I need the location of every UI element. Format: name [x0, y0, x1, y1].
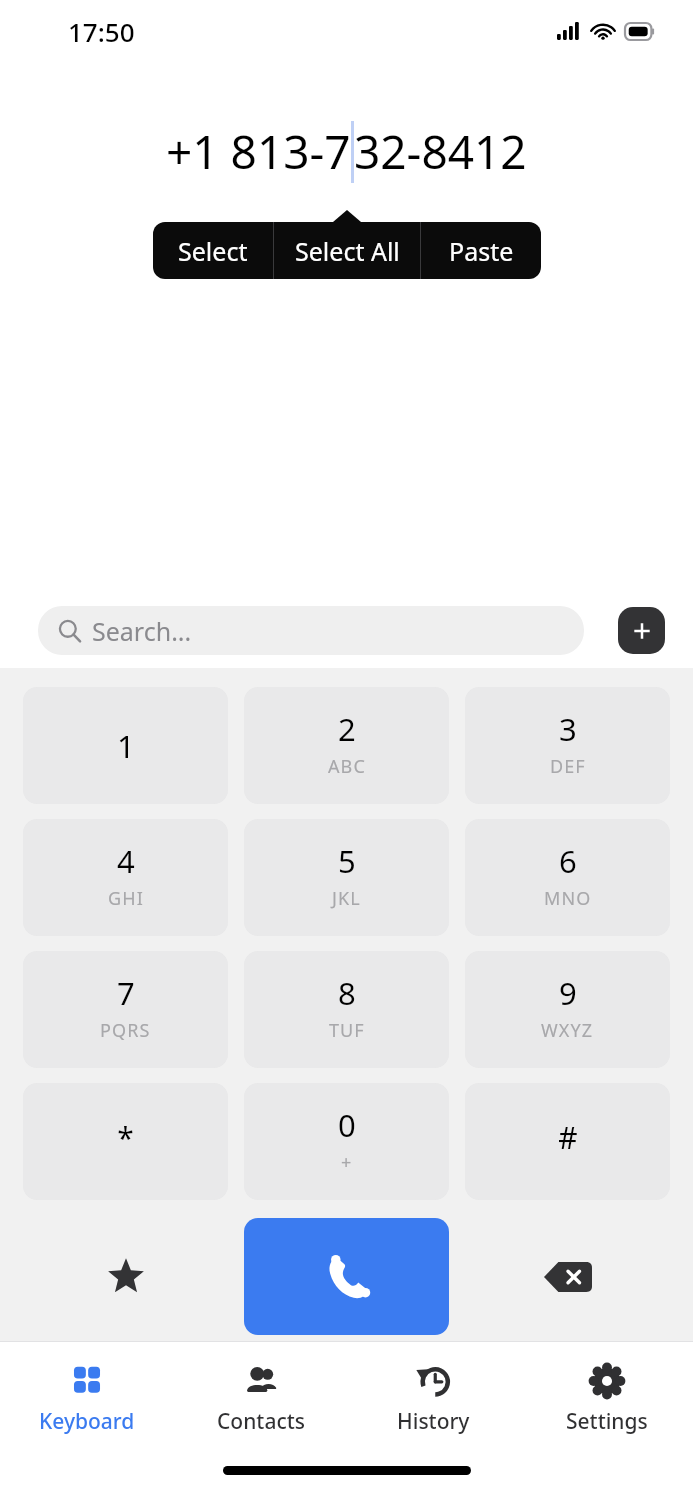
staticText: 1: [117, 725, 135, 767]
staticText: 0: [338, 1104, 356, 1146]
staticText: PQRS: [100, 1018, 151, 1043]
staticText: 32-8412: [354, 120, 527, 183]
staticText: 17:50: [68, 14, 135, 49]
button[interactable]: 1: [23, 687, 228, 804]
button[interactable]: Search...: [38, 606, 584, 655]
button[interactable]: Settings: [520, 1342, 693, 1454]
staticText: *: [117, 1117, 134, 1158]
button[interactable]: 8: [244, 951, 449, 1068]
button[interactable]: 4: [23, 819, 228, 936]
staticText: 7: [117, 972, 135, 1014]
staticText: ABC: [328, 754, 366, 779]
button[interactable]: *: [23, 1083, 228, 1200]
staticText: GHI: [108, 886, 144, 911]
staticText: 5: [338, 840, 356, 882]
button[interactable]: 0: [244, 1083, 449, 1200]
staticText: DEF: [550, 754, 586, 779]
button[interactable]: Add contact: [618, 607, 665, 654]
staticText: 2: [338, 708, 356, 750]
staticText: Keyboard: [39, 1407, 135, 1436]
staticText: #: [558, 1117, 578, 1158]
staticText: Search...: [92, 614, 192, 648]
button[interactable]: 7: [23, 951, 228, 1068]
staticText: 4: [117, 840, 135, 882]
staticText: Select: [178, 234, 248, 268]
staticText: 9: [559, 972, 577, 1014]
button[interactable]: Keyboard: [0, 1342, 174, 1454]
button[interactable]: 9: [465, 951, 670, 1068]
button[interactable]: 5: [244, 819, 449, 936]
button[interactable]: Select: [153, 222, 273, 279]
staticText: Select All: [295, 234, 400, 268]
button[interactable]: #: [465, 1083, 670, 1200]
staticText: History: [397, 1407, 470, 1436]
staticText: Paste: [449, 234, 514, 268]
staticText: Settings: [566, 1407, 648, 1436]
staticText: Contacts: [217, 1407, 305, 1436]
staticText: WXYZ: [541, 1018, 594, 1043]
staticText: JKL: [332, 886, 361, 911]
button[interactable]: 6: [465, 819, 670, 936]
staticText: +1 813-7: [166, 120, 351, 183]
button[interactable]: Paste: [421, 222, 541, 279]
staticText: TUF: [329, 1018, 365, 1043]
staticText: 6: [559, 840, 577, 882]
button[interactable]: 2: [244, 687, 449, 804]
button[interactable]: Contacts: [174, 1342, 347, 1454]
button[interactable]: Select All: [274, 222, 420, 279]
button[interactable]: Backspace: [457, 1215, 678, 1338]
button[interactable]: Call: [244, 1218, 449, 1335]
staticText: +: [341, 1150, 353, 1175]
staticText: 8: [338, 972, 356, 1014]
staticText: MNO: [544, 886, 592, 911]
staticText: 3: [559, 708, 577, 750]
button[interactable]: Favorites: [15, 1215, 236, 1338]
button[interactable]: History: [347, 1342, 520, 1454]
button[interactable]: 3: [465, 687, 670, 804]
